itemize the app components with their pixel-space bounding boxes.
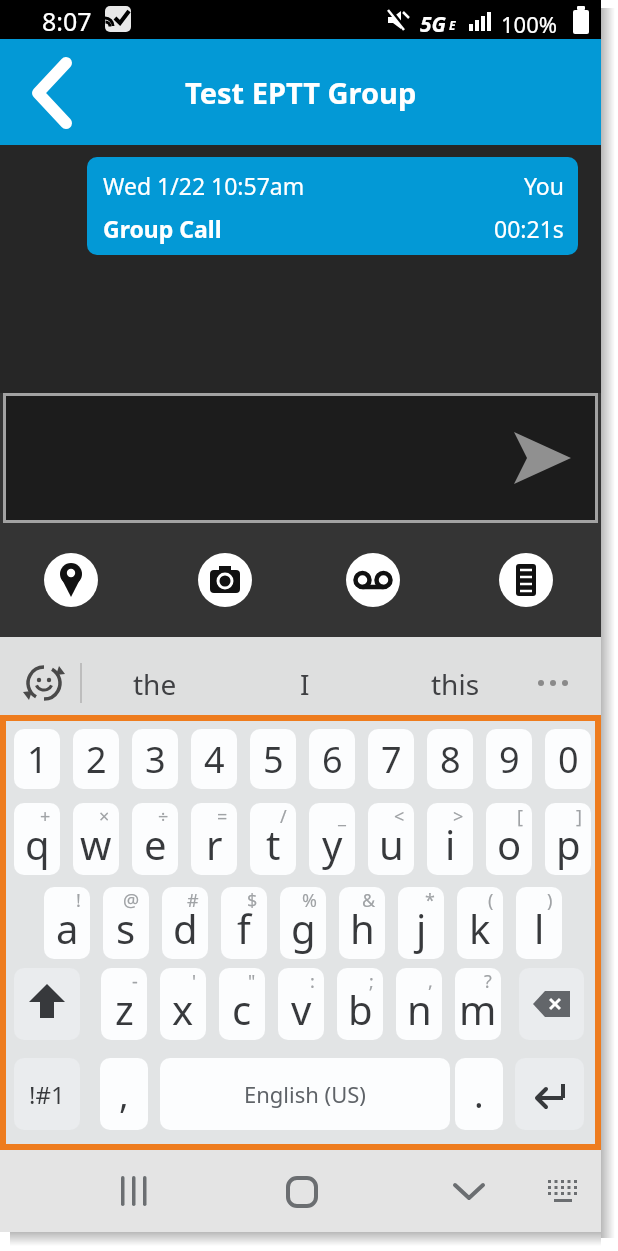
- button[interactable]: [346, 553, 400, 607]
- button[interactable]: 7: [368, 729, 414, 789]
- staticText: f: [237, 901, 251, 955]
- staticText: -: [132, 969, 138, 994]
- button[interactable]: o: [486, 803, 532, 875]
- staticText: 5: [263, 735, 284, 784]
- staticText: m: [459, 982, 497, 1036]
- button[interactable]: 6: [309, 729, 355, 789]
- button[interactable]: 3: [132, 729, 178, 789]
- button[interactable]: f: [221, 887, 267, 959]
- button[interactable]: [536, 675, 572, 691]
- button[interactable]: n: [396, 968, 442, 1040]
- staticText: p: [556, 817, 581, 871]
- button[interactable]: Wed 1/22 10:57am: [87, 157, 578, 255]
- button[interactable]: [14, 968, 80, 1040]
- staticText: j: [416, 901, 427, 955]
- button[interactable]: ,: [100, 1058, 148, 1130]
- button[interactable]: 4: [191, 729, 237, 789]
- button[interactable]: 1: [14, 729, 60, 789]
- button[interactable]: 2: [73, 729, 119, 789]
- button[interactable]: [30, 58, 76, 128]
- staticText: ": [248, 969, 256, 994]
- button[interactable]: [519, 968, 584, 1040]
- button[interactable]: h: [339, 887, 385, 959]
- staticText: ]: [576, 804, 582, 829]
- button[interactable]: [286, 1176, 318, 1207]
- staticText: h: [350, 901, 375, 955]
- button[interactable]: the: [105, 645, 205, 723]
- staticText: 6: [322, 735, 343, 784]
- button[interactable]: y: [309, 803, 355, 875]
- staticText: 0: [558, 735, 579, 784]
- staticText: a: [56, 901, 79, 955]
- staticText: 00:21s: [494, 213, 564, 244]
- button[interactable]: z: [101, 968, 147, 1040]
- button[interactable]: 5: [250, 729, 296, 789]
- button[interactable]: g: [280, 887, 326, 959]
- staticText: ?: [484, 969, 492, 994]
- button[interactable]: [514, 432, 572, 485]
- staticText: 5G: [420, 10, 447, 39]
- button[interactable]: [25, 664, 63, 702]
- button[interactable]: [515, 1058, 584, 1130]
- button[interactable]: u: [368, 803, 414, 875]
- button[interactable]: 0: [545, 729, 591, 789]
- staticText: i: [445, 817, 456, 871]
- button[interactable]: q: [14, 803, 60, 875]
- button[interactable]: m: [455, 968, 501, 1040]
- staticText: =: [217, 804, 228, 829]
- button[interactable]: w: [73, 803, 119, 875]
- button[interactable]: [453, 1183, 485, 1201]
- button[interactable]: t: [250, 803, 296, 875]
- button[interactable]: English (US): [160, 1058, 450, 1130]
- button[interactable]: e: [132, 803, 178, 875]
- button[interactable]: [3, 393, 598, 523]
- button[interactable]: 9: [486, 729, 532, 789]
- button[interactable]: [198, 553, 252, 607]
- staticText: Wed 1/22 10:57am: [103, 170, 305, 201]
- staticText: o: [497, 817, 522, 871]
- button[interactable]: 8: [427, 729, 473, 789]
- button[interactable]: [44, 553, 98, 607]
- staticText: :: [310, 969, 315, 994]
- button[interactable]: r: [191, 803, 237, 875]
- staticText: l: [534, 901, 545, 955]
- staticText: b: [348, 982, 373, 1036]
- button[interactable]: k: [457, 887, 503, 959]
- button[interactable]: c: [219, 968, 265, 1040]
- button[interactable]: j: [398, 887, 444, 959]
- button[interactable]: b: [337, 968, 383, 1040]
- staticText: 1: [27, 735, 48, 784]
- button[interactable]: [120, 1176, 152, 1206]
- staticText: [: [517, 804, 523, 829]
- button[interactable]: v: [278, 968, 324, 1040]
- button[interactable]: d: [162, 887, 208, 959]
- staticText: +: [40, 804, 51, 829]
- button[interactable]: [546, 1178, 580, 1206]
- staticText: (: [488, 888, 494, 913]
- button[interactable]: this: [405, 645, 505, 723]
- button[interactable]: p: [545, 803, 591, 875]
- button[interactable]: a: [44, 887, 90, 959]
- staticText: c: [232, 982, 252, 1036]
- staticText: ': [192, 969, 197, 994]
- staticText: this: [431, 665, 480, 703]
- button[interactable]: x: [160, 968, 206, 1040]
- button[interactable]: .: [455, 1058, 503, 1130]
- staticText: 2: [86, 735, 107, 784]
- staticText: E: [449, 17, 456, 33]
- button[interactable]: !#1: [14, 1058, 80, 1130]
- staticText: x: [172, 982, 194, 1036]
- staticText: u: [379, 817, 404, 871]
- staticText: q: [25, 817, 50, 871]
- button[interactable]: s: [103, 887, 149, 959]
- button[interactable]: l: [516, 887, 562, 959]
- staticText: 3: [145, 735, 166, 784]
- button[interactable]: i: [427, 803, 473, 875]
- button[interactable]: [499, 553, 553, 607]
- staticText: >: [453, 804, 464, 829]
- staticText: 4: [204, 735, 225, 784]
- button[interactable]: I: [255, 645, 355, 723]
- staticText: the: [133, 665, 177, 703]
- staticText: w: [80, 817, 112, 871]
- staticText: k: [469, 901, 491, 955]
